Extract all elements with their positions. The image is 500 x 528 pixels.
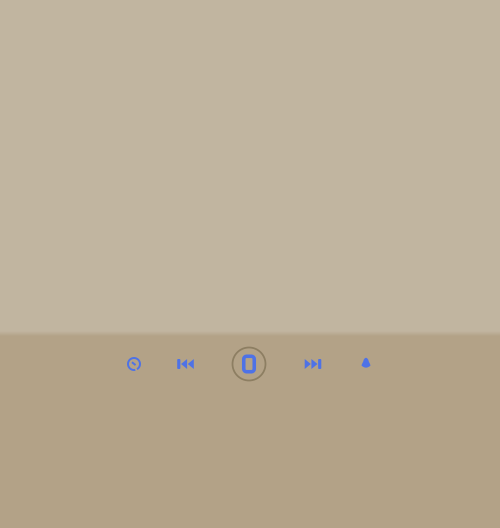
button[interactable]: Playback speed [111,341,157,387]
button[interactable]: Previous track [162,341,208,387]
button[interactable]: Next track [290,341,336,387]
button[interactable]: Play [226,341,272,387]
button[interactable]: Audio output [343,341,389,387]
